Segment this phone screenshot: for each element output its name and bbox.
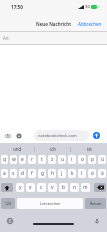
staticText: ich — [50, 146, 56, 152]
button[interactable]: Emoji keyboard — [6, 217, 14, 225]
staticText: r — [31, 156, 33, 163]
button[interactable]: z — [48, 155, 56, 164]
staticText: ist — [87, 146, 92, 152]
staticText: h — [51, 170, 54, 177]
button[interactable]: w — [10, 155, 17, 164]
button[interactable]: Send — [93, 132, 100, 139]
staticText: ü — [101, 156, 104, 163]
button[interactable]: Abbrechen — [73, 17, 107, 29]
staticText: j — [61, 170, 63, 177]
button[interactable]: ü — [98, 155, 106, 164]
staticText: k — [71, 170, 74, 177]
button[interactable]: q — [1, 155, 8, 164]
staticText: n — [73, 184, 76, 191]
button[interactable]: x — [26, 183, 35, 192]
button[interactable]: b — [59, 183, 68, 192]
staticText: a — [3, 170, 6, 177]
staticText: g — [41, 170, 44, 177]
button[interactable]: g — [38, 169, 46, 178]
staticText: q — [3, 156, 6, 163]
button[interactable]: a — [1, 169, 8, 178]
staticText: 123 — [5, 201, 12, 206]
staticText: e — [21, 156, 24, 163]
staticText: d — [21, 170, 24, 177]
staticText: u — [61, 156, 64, 163]
button[interactable]: ich — [35, 143, 71, 155]
staticText: Return — [90, 201, 102, 206]
button[interactable]: Dictation — [93, 217, 101, 225]
staticText: m — [83, 184, 88, 191]
button[interactable] — [94, 183, 106, 192]
staticText: w — [12, 156, 16, 163]
button[interactable]: An: — [0, 32, 107, 44]
staticText: und — [13, 146, 22, 152]
button[interactable]: t — [38, 155, 46, 164]
staticText: y — [19, 184, 22, 191]
staticText: Neue Nachricht — [36, 21, 72, 27]
staticText: notebookcheck.com — [38, 133, 77, 139]
button[interactable]: l — [78, 169, 86, 178]
staticText: p — [91, 156, 94, 163]
staticText: b — [62, 184, 65, 191]
button[interactable]: notebookcheck.com — [34, 130, 89, 141]
staticText: ä — [101, 170, 104, 177]
button[interactable]: m — [81, 183, 90, 192]
button[interactable]: und — [0, 143, 35, 155]
button[interactable]: f — [28, 169, 36, 178]
staticText: v — [51, 184, 54, 191]
button[interactable]: Leerzeichen — [17, 198, 83, 209]
staticText: An: — [3, 35, 10, 41]
button[interactable]: o — [78, 155, 86, 164]
staticText: t — [41, 156, 43, 163]
button[interactable]: Camera — [5, 133, 11, 139]
button[interactable] — [1, 183, 13, 192]
button[interactable]: n — [70, 183, 79, 192]
button[interactable]: ä — [98, 169, 106, 178]
staticText: s — [12, 170, 15, 177]
button[interactable]: j — [58, 169, 66, 178]
staticText: z — [51, 156, 54, 163]
staticText: o — [81, 156, 84, 163]
staticText: x — [29, 184, 32, 191]
staticText: Abbrechen — [78, 21, 102, 27]
button[interactable]: ist — [71, 143, 107, 155]
button[interactable]: u — [58, 155, 66, 164]
staticText: 17:50 — [11, 4, 23, 10]
button[interactable]: h — [48, 169, 56, 178]
button[interactable]: s — [10, 169, 17, 178]
button[interactable]: 123 — [1, 198, 15, 209]
staticText: f — [31, 170, 33, 177]
button[interactable]: e — [19, 155, 26, 164]
button[interactable]: Markup — [16, 133, 22, 139]
button[interactable]: ö — [88, 169, 96, 178]
button[interactable]: Return — [85, 198, 106, 209]
button[interactable]: i — [68, 155, 76, 164]
staticText: l — [81, 170, 83, 177]
button[interactable]: p — [88, 155, 96, 164]
staticText: ö — [91, 170, 94, 177]
staticText: Leerzeichen — [40, 201, 61, 206]
button[interactable]: y — [16, 183, 24, 192]
staticText: 30 — [85, 4, 90, 10]
staticText: c — [40, 184, 43, 191]
button[interactable]: k — [68, 169, 76, 178]
button[interactable]: v — [48, 183, 57, 192]
button[interactable]: c — [37, 183, 46, 192]
button[interactable]: r — [28, 155, 36, 164]
button[interactable]: d — [19, 169, 26, 178]
staticText: i — [71, 156, 73, 163]
